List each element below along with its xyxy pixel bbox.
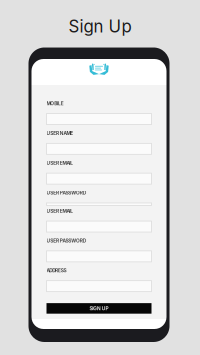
button[interactable]: SIGN UP: [46, 303, 151, 314]
staticText: USER EMAIL: [46, 208, 73, 214]
staticText: USER EMAIL: [46, 160, 73, 166]
staticText: MOBILE: [46, 100, 64, 106]
staticText: ADDRESS: [46, 268, 67, 273]
staticText: USER PASSWORD: [46, 238, 86, 244]
staticText: Sign Up: [68, 16, 131, 37]
staticText: SIGN UP: [89, 305, 109, 311]
staticText: USER PASSWORD: [46, 190, 86, 196]
staticText: USER NAME: [46, 130, 73, 136]
